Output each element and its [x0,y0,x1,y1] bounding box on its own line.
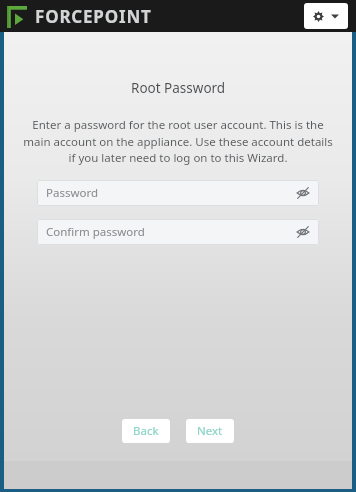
staticText: Enter a password for the root user accou… [22,117,334,165]
staticText: Back [133,423,159,439]
staticText: Next [197,423,223,439]
button[interactable]: Show password [294,184,312,202]
button[interactable]: Back [122,419,170,443]
staticText: FORCEPOINT [35,5,152,28]
button[interactable]: Settings menu [304,3,348,29]
button[interactable]: Show password [294,223,312,241]
staticText: Confirm password [46,224,145,240]
button[interactable]: Next [186,419,234,443]
staticText: Root Password [131,79,226,97]
button[interactable]: Password [37,180,319,206]
button[interactable]: Confirm password [37,219,319,245]
staticText: Password [46,185,99,201]
